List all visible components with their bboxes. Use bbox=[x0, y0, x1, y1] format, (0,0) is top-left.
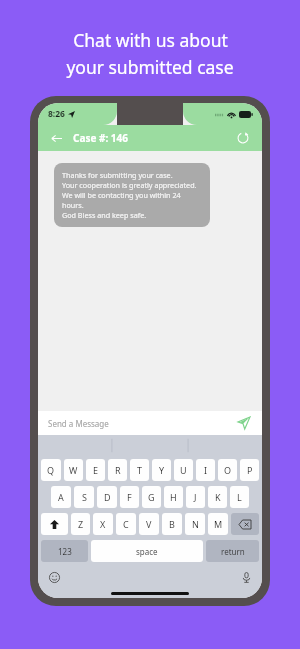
staticText: your submitted case bbox=[66, 55, 234, 79]
button[interactable]: Shift bbox=[41, 513, 68, 535]
button[interactable]: Back bbox=[48, 130, 64, 146]
button[interactable]: M bbox=[208, 513, 228, 535]
button[interactable]: Delete bbox=[231, 513, 259, 535]
staticText: Thanks for submitting your case. bbox=[62, 170, 173, 180]
button[interactable]: E bbox=[86, 459, 105, 481]
staticText: P bbox=[247, 464, 253, 476]
staticText: Y bbox=[159, 464, 165, 476]
button[interactable]: O bbox=[218, 459, 237, 481]
button[interactable]: Emoji bbox=[46, 569, 62, 585]
staticText: G bbox=[148, 491, 155, 503]
button[interactable]: I bbox=[196, 459, 215, 481]
staticText: space bbox=[136, 546, 158, 557]
staticText: Send a Message bbox=[48, 418, 109, 429]
button[interactable]: V bbox=[139, 513, 159, 535]
staticText: return bbox=[221, 546, 245, 557]
button[interactable]: space bbox=[91, 540, 203, 562]
staticText: W bbox=[69, 464, 78, 476]
button[interactable]: L bbox=[230, 486, 249, 508]
staticText: hours. bbox=[62, 200, 84, 210]
staticText: M bbox=[214, 518, 223, 530]
button[interactable]: X bbox=[93, 513, 113, 535]
button[interactable]: N bbox=[185, 513, 205, 535]
staticText: Chat with us about bbox=[73, 28, 228, 52]
staticText: We will be contacting you within 24 bbox=[62, 190, 181, 200]
staticText: J bbox=[194, 491, 197, 503]
staticText: I bbox=[204, 464, 208, 476]
staticText: God Bless and keep safe. bbox=[62, 210, 147, 220]
staticText: V bbox=[146, 518, 152, 530]
staticText: 8:26 bbox=[48, 108, 65, 120]
staticText: S bbox=[82, 491, 87, 503]
staticText: C bbox=[123, 518, 129, 530]
button[interactable]: J bbox=[186, 486, 205, 508]
staticText: H bbox=[170, 491, 177, 503]
button[interactable]: 123 bbox=[41, 540, 88, 562]
staticText: K bbox=[215, 491, 221, 503]
button[interactable]: C bbox=[116, 513, 136, 535]
staticText: B bbox=[169, 518, 175, 530]
button[interactable]: B bbox=[162, 513, 182, 535]
staticText: Z bbox=[78, 518, 84, 530]
button[interactable]: H bbox=[164, 486, 183, 508]
button[interactable]: R bbox=[108, 459, 127, 481]
staticText: Q bbox=[47, 464, 55, 476]
button[interactable]: U bbox=[174, 459, 193, 481]
button[interactable]: P bbox=[240, 459, 259, 481]
staticText: L bbox=[237, 491, 242, 503]
button[interactable]: Z bbox=[71, 513, 90, 535]
button[interactable]: Q bbox=[41, 459, 61, 481]
staticText: O bbox=[224, 464, 232, 476]
button[interactable]: A bbox=[51, 486, 71, 508]
button[interactable]: F bbox=[120, 486, 139, 508]
staticText: X bbox=[100, 518, 106, 530]
button[interactable]: W bbox=[64, 459, 83, 481]
staticText: A bbox=[58, 491, 64, 503]
button[interactable]: Refresh bbox=[234, 129, 252, 147]
button[interactable]: S bbox=[74, 486, 94, 508]
staticText: N bbox=[192, 518, 199, 530]
button[interactable]: T bbox=[130, 459, 149, 481]
button[interactable]: D bbox=[97, 486, 117, 508]
button[interactable]: return bbox=[206, 540, 259, 562]
button[interactable]: K bbox=[208, 486, 227, 508]
button[interactable]: G bbox=[142, 486, 161, 508]
staticText: R bbox=[115, 464, 121, 476]
button[interactable]: Thanks for submitting your case. bbox=[54, 163, 210, 227]
staticText: U bbox=[180, 464, 187, 476]
staticText: Case #: 146 bbox=[73, 131, 129, 145]
button[interactable]: Voice input bbox=[238, 569, 254, 585]
button[interactable]: Send bbox=[236, 415, 252, 431]
staticText: D bbox=[104, 491, 111, 503]
staticText: T bbox=[137, 464, 143, 476]
staticText: F bbox=[127, 491, 132, 503]
staticText: Your cooperation is greatly appreciated. bbox=[62, 180, 197, 190]
button[interactable]: Y bbox=[152, 459, 171, 481]
staticText: 123 bbox=[58, 546, 72, 557]
button[interactable]: Send a Message bbox=[38, 411, 262, 435]
staticText: E bbox=[93, 464, 99, 476]
